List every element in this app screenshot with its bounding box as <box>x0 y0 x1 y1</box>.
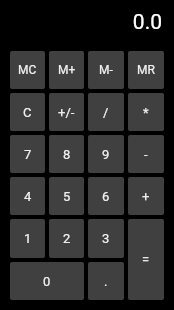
button[interactable]: +/- <box>49 93 84 131</box>
button[interactable]: C <box>10 93 45 131</box>
staticText: MC <box>18 63 37 77</box>
staticText: 7 <box>24 147 32 162</box>
staticText: 3 <box>102 231 110 246</box>
staticText: . <box>104 274 108 289</box>
button[interactable]: 3 <box>88 219 124 258</box>
staticText: * <box>143 105 149 120</box>
button[interactable]: 8 <box>49 135 84 173</box>
staticText: C <box>23 105 32 120</box>
staticText: 8 <box>63 147 71 162</box>
button[interactable]: 6 <box>88 177 124 215</box>
button[interactable]: MR <box>128 51 164 89</box>
staticText: M- <box>99 63 113 77</box>
button[interactable]: 1 <box>10 219 45 258</box>
staticText: + <box>142 189 150 204</box>
staticText: 5 <box>63 189 71 204</box>
staticText: 9 <box>102 147 110 162</box>
button[interactable]: 0 <box>10 262 84 300</box>
button[interactable]: M+ <box>49 51 84 89</box>
button[interactable]: 2 <box>49 219 84 258</box>
button[interactable]: 9 <box>88 135 124 173</box>
button[interactable]: M- <box>88 51 124 89</box>
staticText: 0 <box>43 274 51 289</box>
button[interactable]: - <box>128 135 164 173</box>
button[interactable]: . <box>88 262 124 300</box>
staticText: +/- <box>58 105 75 120</box>
button[interactable]: 4 <box>10 177 45 215</box>
button[interactable]: * <box>128 93 164 131</box>
staticText: 0.0 <box>132 10 162 35</box>
button[interactable]: + <box>128 177 164 215</box>
staticText: - <box>144 147 148 162</box>
staticText: M+ <box>58 63 76 77</box>
button[interactable]: / <box>88 93 124 131</box>
staticText: 2 <box>63 231 71 246</box>
staticText: MR <box>137 63 155 77</box>
button[interactable]: MC <box>10 51 45 89</box>
staticText: / <box>103 105 109 120</box>
button[interactable]: 7 <box>10 135 45 173</box>
staticText: 4 <box>24 189 32 204</box>
button[interactable]: 5 <box>49 177 84 215</box>
staticText: = <box>142 252 150 267</box>
staticText: 6 <box>102 189 110 204</box>
staticText: 1 <box>24 231 32 246</box>
button[interactable]: = <box>128 219 164 300</box>
